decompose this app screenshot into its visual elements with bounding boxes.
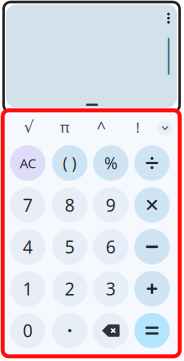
button[interactable]: 2 bbox=[52, 271, 87, 306]
button[interactable]: 6 bbox=[93, 229, 128, 265]
button[interactable]: Delete bbox=[93, 313, 128, 348]
button[interactable]: 8 bbox=[52, 187, 87, 223]
staticText: % bbox=[104, 152, 117, 174]
button[interactable]: 9 bbox=[93, 187, 128, 223]
staticText: ^ bbox=[97, 116, 106, 138]
button[interactable]: 3 bbox=[93, 271, 128, 306]
staticText: 1 bbox=[23, 277, 33, 300]
button[interactable]: Plus bbox=[134, 271, 170, 306]
button[interactable]: Divide bbox=[134, 145, 170, 181]
staticText: π bbox=[60, 117, 70, 137]
staticText: 4 bbox=[23, 235, 33, 258]
button[interactable]: ( ) bbox=[52, 145, 87, 181]
button[interactable]: AC bbox=[10, 145, 46, 181]
button[interactable]: ^ bbox=[88, 115, 114, 139]
button[interactable]: 1 bbox=[10, 271, 46, 306]
button[interactable]: Decimal point bbox=[52, 313, 87, 348]
staticText: 0 bbox=[23, 319, 33, 342]
button[interactable]: √ bbox=[16, 115, 42, 139]
button[interactable]: Equals bbox=[134, 313, 170, 348]
button[interactable]: π bbox=[52, 115, 78, 139]
button[interactable]: More options bbox=[159, 8, 177, 28]
button[interactable]: Multiply bbox=[134, 187, 170, 223]
button[interactable]: Minus bbox=[134, 229, 170, 265]
button[interactable]: 4 bbox=[10, 229, 46, 265]
staticText: 9 bbox=[106, 193, 116, 216]
staticText: ! bbox=[136, 117, 140, 137]
staticText: 3 bbox=[106, 277, 116, 300]
button[interactable]: 5 bbox=[52, 229, 87, 265]
staticText: 5 bbox=[65, 235, 75, 258]
staticText: 7 bbox=[23, 193, 33, 216]
button[interactable]: ! bbox=[125, 115, 151, 139]
staticText: 6 bbox=[106, 235, 116, 258]
button[interactable]: 0 bbox=[10, 313, 46, 348]
button[interactable]: % bbox=[93, 145, 128, 181]
button[interactable]: More functions bbox=[155, 118, 175, 138]
staticText: ( ) bbox=[63, 152, 77, 174]
button[interactable]: 7 bbox=[10, 187, 46, 223]
staticText: 8 bbox=[65, 193, 75, 216]
staticText: 2 bbox=[65, 277, 75, 300]
staticText: AC bbox=[20, 154, 36, 172]
staticText: √ bbox=[24, 118, 34, 136]
